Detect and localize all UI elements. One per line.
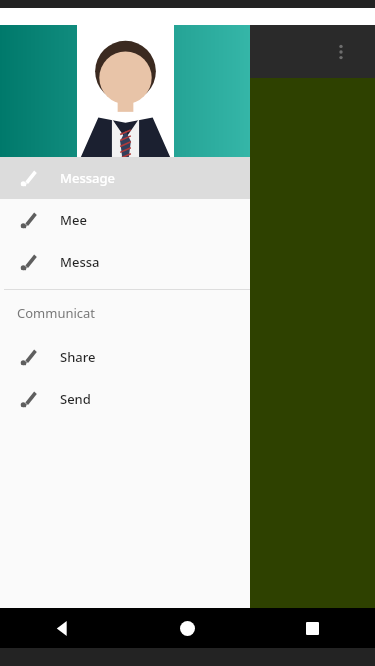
button[interactable]: Home bbox=[125, 608, 250, 648]
button[interactable]: Send bbox=[0, 378, 250, 420]
button[interactable]: Messa bbox=[0, 241, 250, 283]
button[interactable]: Share bbox=[0, 336, 250, 378]
staticText: Mee bbox=[60, 211, 87, 229]
staticText: Send bbox=[60, 390, 91, 408]
button[interactable]: More options bbox=[323, 34, 359, 70]
button[interactable]: Mee bbox=[0, 199, 250, 241]
button[interactable]: Back bbox=[0, 608, 125, 648]
button[interactable]: Recents bbox=[250, 608, 375, 648]
staticText: Share bbox=[60, 348, 96, 366]
staticText: Message bbox=[60, 169, 115, 187]
staticText: Communicat bbox=[17, 304, 96, 322]
staticText: Messa bbox=[60, 253, 100, 271]
button[interactable]: Message bbox=[0, 157, 250, 199]
